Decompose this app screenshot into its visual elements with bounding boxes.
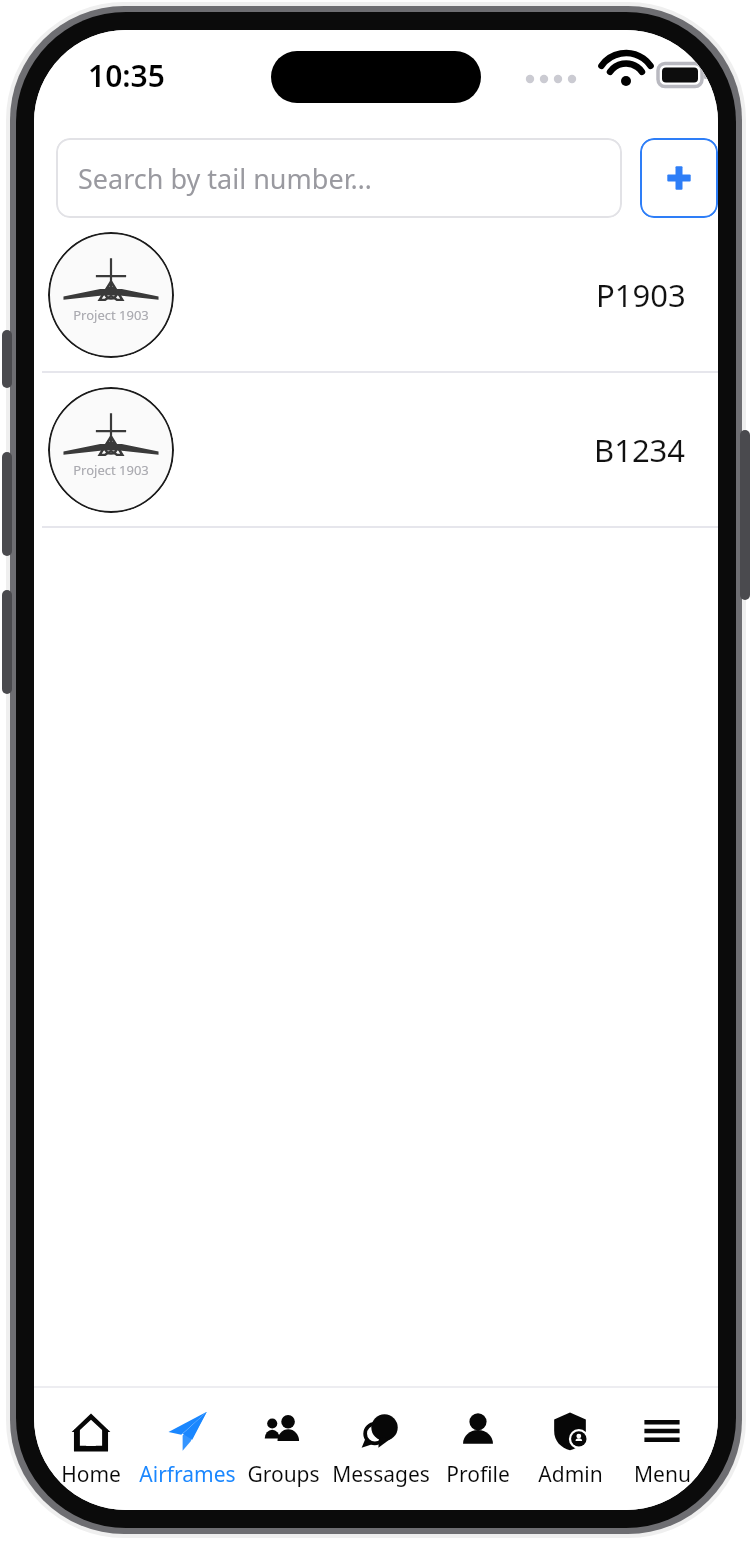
staticText: Admin	[538, 1460, 603, 1489]
button[interactable]: Project 1903	[34, 218, 718, 373]
button[interactable]: Menu	[616, 1388, 708, 1510]
button[interactable]: Add airframe	[640, 138, 718, 218]
staticText: Search by tail number…	[78, 160, 372, 197]
staticText: Airframes	[139, 1460, 236, 1489]
staticText: Profile	[446, 1460, 510, 1489]
button[interactable]: Profile	[432, 1388, 524, 1510]
staticText: Menu	[634, 1460, 691, 1489]
staticText: Project 1903	[73, 461, 149, 479]
button[interactable]: Project 1903	[34, 373, 718, 528]
button[interactable]: Home	[44, 1388, 137, 1510]
staticText: B1234	[594, 429, 686, 471]
button[interactable]: Messages	[329, 1388, 432, 1510]
button[interactable]: Airframes	[137, 1388, 237, 1510]
button[interactable]: Search by tail number…	[56, 138, 622, 218]
staticText: Groups	[247, 1460, 320, 1489]
button[interactable]: Admin	[524, 1388, 616, 1510]
staticText: P1903	[596, 274, 686, 316]
staticText: Home	[61, 1460, 121, 1489]
staticText: Messages	[332, 1460, 430, 1489]
staticText: Project 1903	[73, 306, 149, 324]
staticText: 10:35	[88, 55, 165, 96]
button[interactable]: Groups	[237, 1388, 329, 1510]
